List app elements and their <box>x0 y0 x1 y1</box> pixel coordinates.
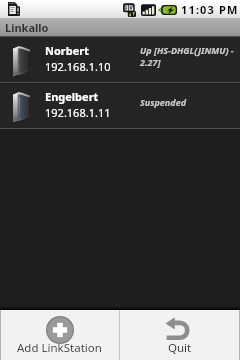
staticText: Suspended <box>140 96 186 108</box>
staticText: Engelbert <box>45 89 99 104</box>
staticText: Quit <box>168 340 192 356</box>
staticText: Norbert <box>45 43 89 58</box>
staticText: 192.168.1.11 <box>45 105 111 120</box>
staticText: Up [HS-DHGL(JINMU) - 2.27] <box>140 44 237 69</box>
button[interactable]: Engelbert <box>0 84 240 130</box>
button[interactable]: Norbert <box>0 38 240 84</box>
staticText: Add LinkStation <box>17 340 102 356</box>
staticText: Linkallo <box>5 20 49 35</box>
staticText: 192.168.1.10 <box>45 59 111 74</box>
button[interactable]: Quit <box>120 310 240 360</box>
button[interactable]: Add LinkStation <box>0 310 119 360</box>
staticText: 11:03 PM <box>181 2 239 17</box>
